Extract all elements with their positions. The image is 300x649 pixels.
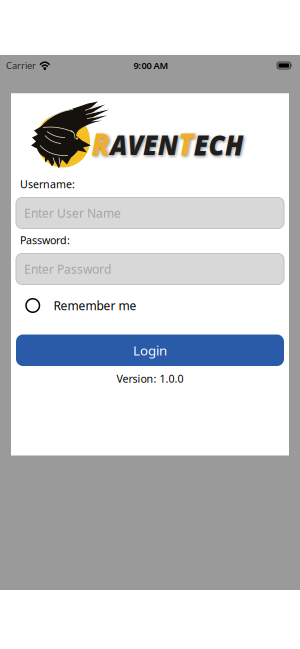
staticText: Version: 1.0.0 [116,371,183,386]
staticText: ECH [196,126,250,163]
button[interactable]: Password text field [16,253,284,284]
staticText: Login [133,341,167,359]
staticText: Enter Password [24,261,111,277]
staticText: Password: [20,233,70,247]
staticText: 9:00 AM [133,59,168,72]
staticText: R [85,123,105,164]
staticText: Remember me [53,297,136,313]
staticText: AVEN [105,126,179,163]
staticText: T [179,123,196,164]
staticText: Username: [20,177,75,191]
button[interactable]: Username text field [16,197,284,228]
button[interactable]: Login [16,334,284,366]
staticText: Enter User Name [24,205,121,221]
button[interactable]: Remember me [11,298,136,312]
staticText: Carrier [6,59,36,72]
